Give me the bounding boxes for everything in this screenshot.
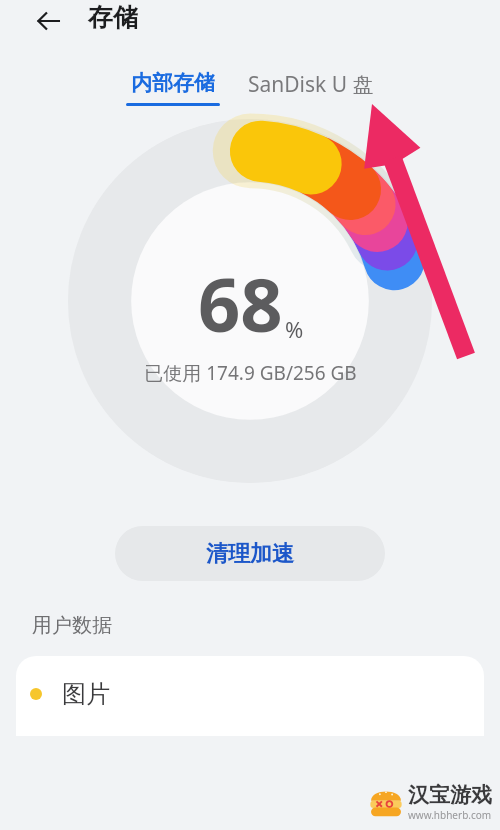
staticText: 用户数据 bbox=[32, 613, 112, 638]
button[interactable]: 清理加速 bbox=[115, 526, 385, 581]
button[interactable]: 图片 bbox=[16, 656, 484, 736]
staticText: 图片 bbox=[62, 679, 110, 709]
staticText: 汉宝游戏 bbox=[408, 782, 492, 808]
staticText: 68 bbox=[198, 253, 283, 354]
staticText: 存储 bbox=[88, 2, 138, 33]
button[interactable]: 内部存储 bbox=[126, 70, 220, 106]
staticText: 内部存储 bbox=[131, 70, 215, 96]
button[interactable]: Back bbox=[26, 0, 70, 42]
button[interactable]: SanDisk U 盘 bbox=[248, 70, 374, 99]
staticText: % bbox=[285, 314, 304, 344]
staticText: www.hbherb.com bbox=[408, 808, 492, 822]
staticText: SanDisk U 盘 bbox=[248, 70, 374, 99]
staticText: 清理加速 bbox=[206, 540, 294, 568]
staticText: 已使用 174.9 GB/256 GB bbox=[144, 360, 357, 386]
